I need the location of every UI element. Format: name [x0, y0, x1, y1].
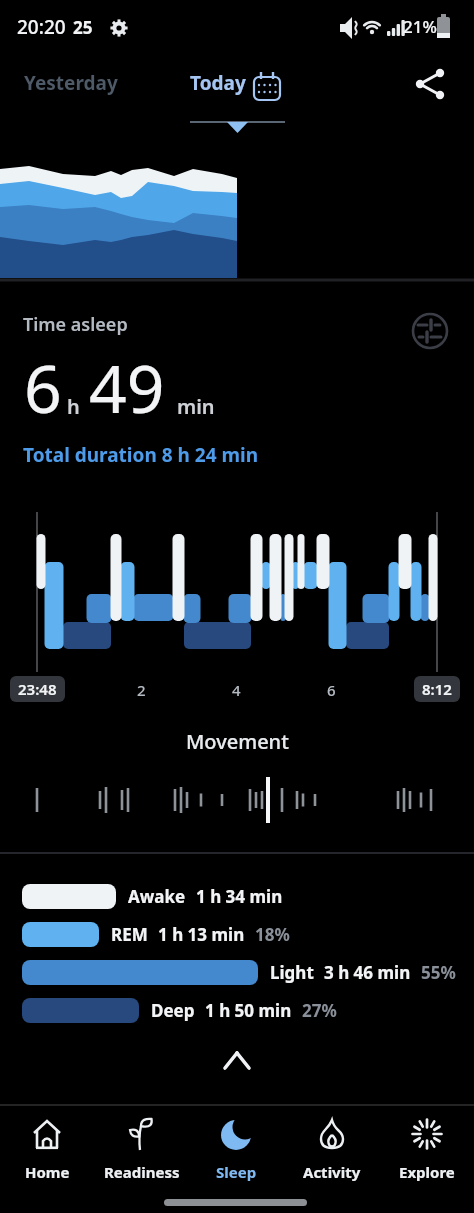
staticText: Time asleep [23, 312, 128, 337]
button[interactable]: Yesterday [24, 70, 118, 96]
staticText: 21% [403, 15, 437, 38]
staticText: Total duration 8 h 24 min [23, 442, 259, 468]
staticText: Sleep [216, 1162, 257, 1182]
staticText: Today [190, 70, 246, 96]
staticText: Yesterday [24, 70, 118, 96]
staticText: 18% [255, 923, 290, 946]
staticText: 49 [89, 342, 165, 432]
staticText: 1 h 34 min [196, 885, 283, 908]
button[interactable] [405, 65, 451, 107]
staticText: 3 h 46 min [324, 961, 411, 984]
staticText: 6 [24, 342, 62, 432]
staticText: 27% [302, 999, 337, 1022]
staticText: Activity [303, 1162, 361, 1182]
staticText: 20:20 [17, 14, 66, 40]
staticText: Light [270, 961, 314, 984]
staticText: 4 [232, 680, 241, 700]
staticText: h [67, 393, 80, 420]
button[interactable]: Readiness [94, 1107, 189, 1182]
button[interactable]: REM [22, 922, 290, 947]
staticText: 25 [73, 16, 93, 39]
staticText: Deep [151, 999, 195, 1022]
staticText: Home [25, 1162, 70, 1182]
staticText: 55% [421, 961, 456, 984]
button[interactable] [213, 1040, 261, 1080]
button[interactable] [412, 312, 450, 350]
staticText: Explore [399, 1162, 455, 1182]
button[interactable]: Sleep [189, 1107, 284, 1182]
staticText: 23:48 [18, 679, 57, 699]
button[interactable]: Activity [284, 1107, 379, 1182]
button[interactable]: Home [0, 1107, 94, 1182]
staticText: Readiness [104, 1162, 180, 1182]
staticText: 6 [327, 680, 336, 700]
staticText: 1 h 13 min [158, 923, 245, 946]
staticText: 1 h 50 min [205, 999, 292, 1022]
button[interactable]: Explore [379, 1107, 474, 1182]
staticText: Awake [128, 885, 186, 908]
staticText: 2 [137, 680, 146, 700]
button[interactable]: Awake [22, 884, 283, 909]
staticText: REM [111, 923, 148, 946]
button[interactable]: Light [22, 960, 456, 985]
button[interactable]: Deep [22, 998, 337, 1023]
staticText: 8:12 [422, 679, 452, 699]
staticText: Movement [186, 728, 289, 755]
staticText: min [177, 393, 215, 420]
button[interactable]: Today [190, 70, 246, 96]
